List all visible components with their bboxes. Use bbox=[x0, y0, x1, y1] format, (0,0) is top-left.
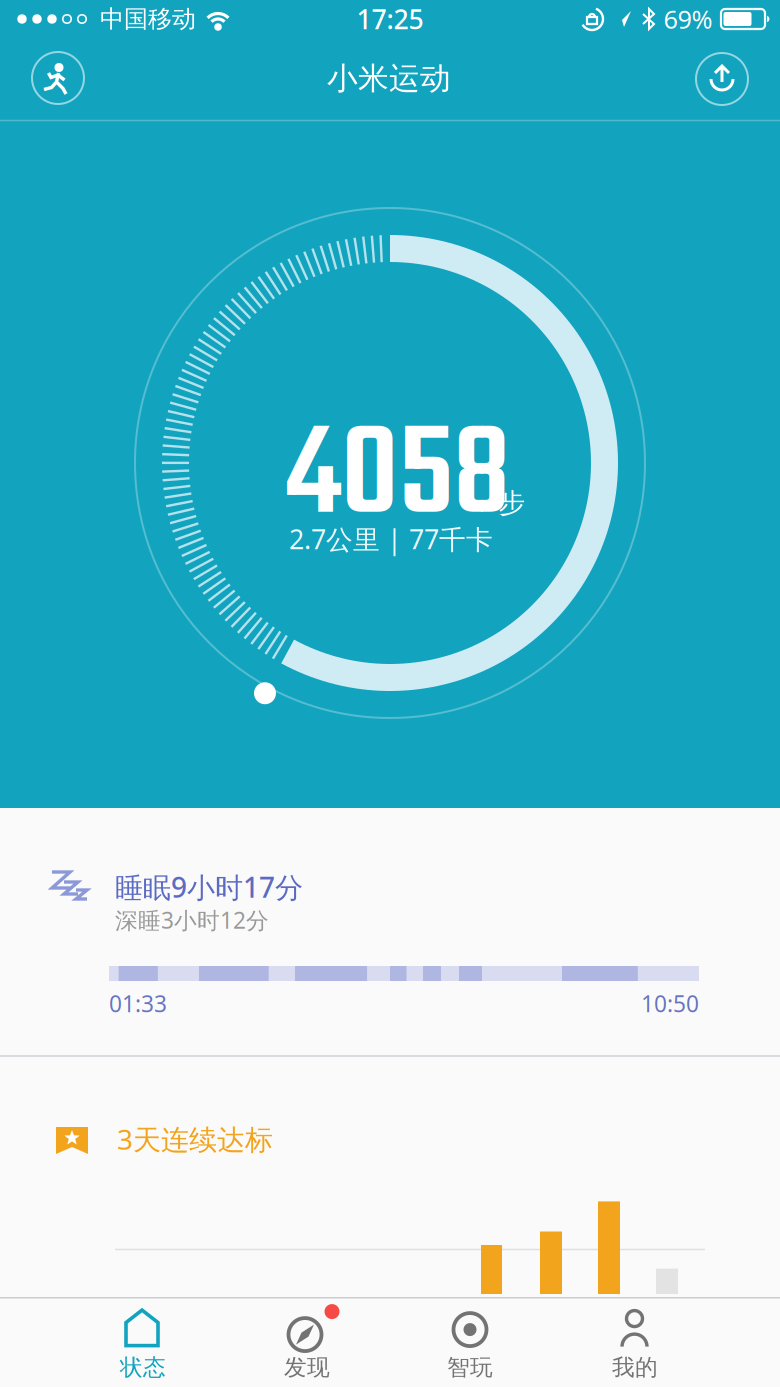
staticText: 智玩 bbox=[447, 1354, 493, 1381]
button[interactable]: 状态 bbox=[63, 1302, 223, 1387]
button[interactable]: Activity bbox=[30, 50, 86, 106]
staticText: 2.7公里 | 77千卡 bbox=[289, 521, 493, 557]
staticText: 3天连续达标 bbox=[117, 1120, 273, 1158]
button[interactable]: 智玩 bbox=[390, 1302, 550, 1387]
staticText: 小米运动 bbox=[327, 60, 451, 97]
staticText: 发现 bbox=[284, 1354, 330, 1381]
staticText: 我的 bbox=[612, 1354, 658, 1381]
staticText: 17:25 bbox=[356, 1, 423, 37]
staticText: 69% bbox=[663, 2, 712, 36]
staticText: 中国移动 bbox=[100, 4, 196, 34]
staticText: 01:33 bbox=[109, 988, 167, 1018]
button[interactable]: 3天连续达标 bbox=[0, 1057, 780, 1297]
staticText: 4058 bbox=[286, 382, 510, 576]
button[interactable]: Share bbox=[694, 51, 750, 107]
staticText: 10:50 bbox=[641, 988, 699, 1018]
staticText: 睡眠9小时17分 bbox=[115, 868, 303, 906]
staticText: 深睡3小时12分 bbox=[115, 905, 269, 935]
staticText: 步 bbox=[498, 487, 525, 519]
button[interactable]: 睡眠9小时17分 bbox=[0, 808, 780, 1055]
staticText: 状态 bbox=[120, 1354, 166, 1381]
button[interactable]: 发现 bbox=[227, 1302, 387, 1387]
button[interactable]: 我的 bbox=[555, 1302, 715, 1387]
